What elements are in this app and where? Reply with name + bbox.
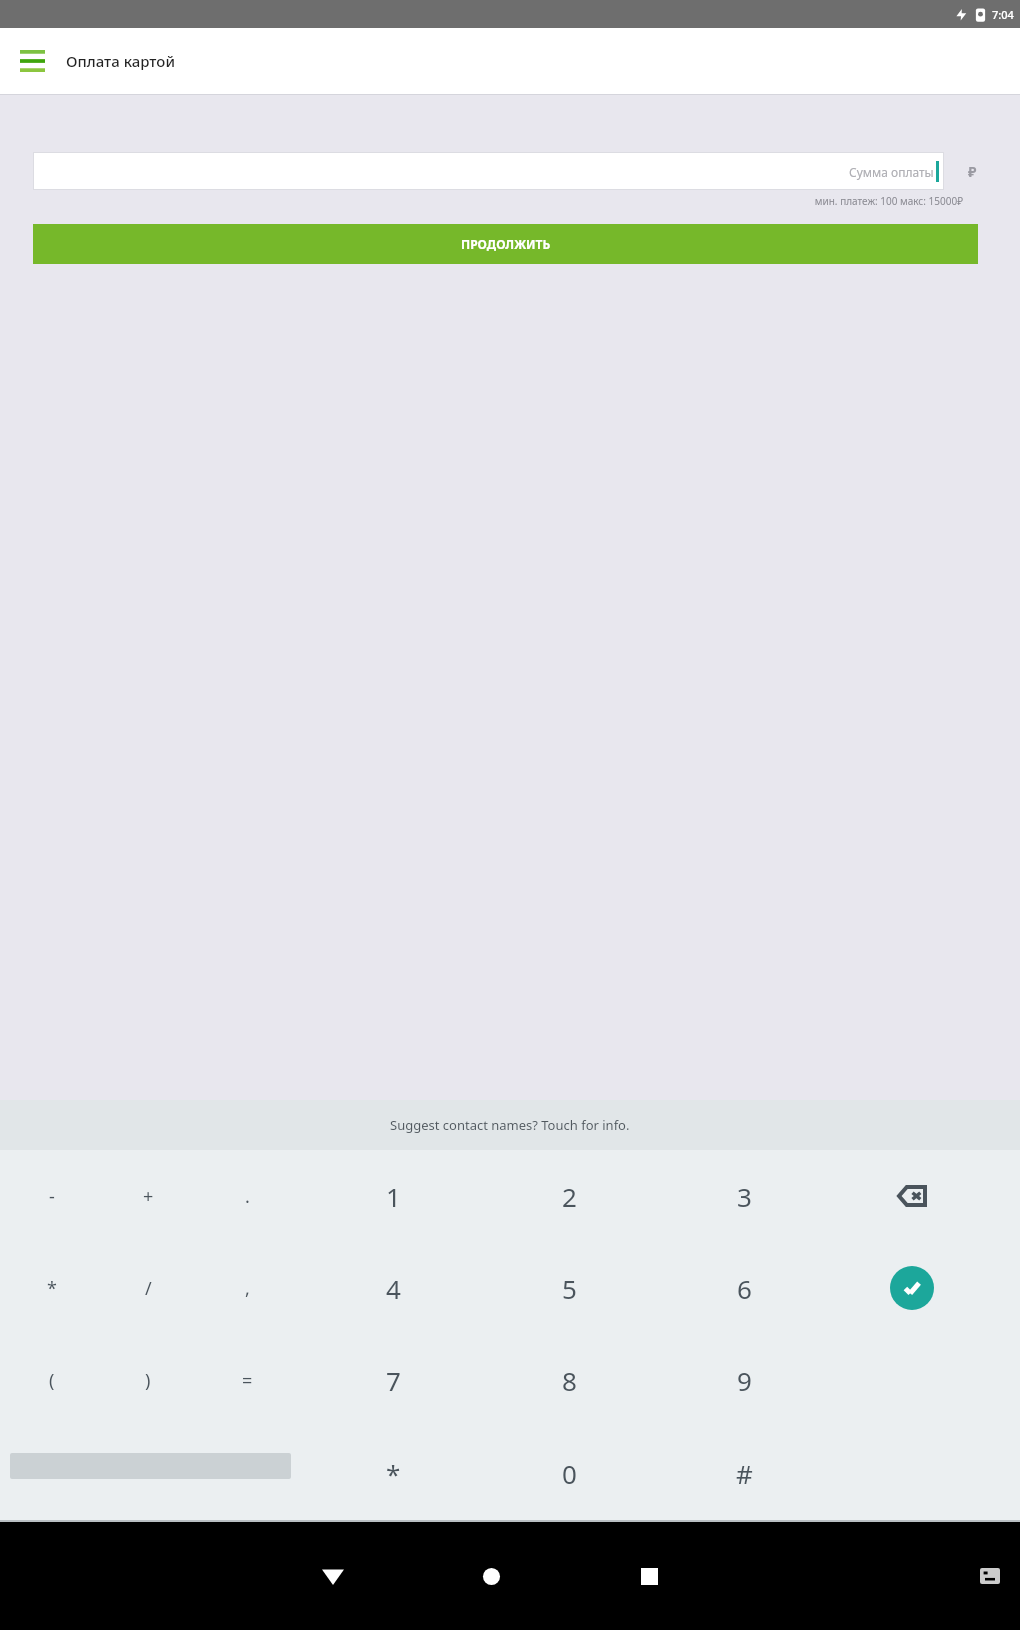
staticText: , [245, 1276, 250, 1301]
staticText: / [145, 1276, 152, 1301]
staticText: 2 [562, 1179, 577, 1214]
button[interactable]: Home [461, 1522, 521, 1630]
button[interactable]: 7 [360, 1334, 426, 1427]
button[interactable]: . [214, 1150, 280, 1242]
button[interactable]: 3 [711, 1150, 777, 1242]
staticText: мин. платеж: 100 макс: 15000₽ [814, 194, 963, 208]
button[interactable]: # [711, 1427, 777, 1520]
button[interactable]: Recent apps [619, 1522, 679, 1630]
button[interactable]: 6 [711, 1242, 777, 1334]
staticText: 4 [386, 1271, 401, 1306]
staticText: ПРОДОЛЖИТЬ [461, 236, 551, 252]
button[interactable]: = [214, 1334, 280, 1427]
button[interactable]: Switch keyboard [970, 1556, 1010, 1596]
staticText: # [736, 1456, 753, 1491]
button[interactable]: 0 [536, 1427, 602, 1520]
button[interactable]: 2 [536, 1150, 602, 1242]
staticText: 3 [737, 1179, 752, 1214]
button[interactable]: ( [19, 1334, 85, 1427]
staticText: = [242, 1368, 253, 1393]
staticText: - [49, 1184, 55, 1209]
button[interactable]: * [19, 1242, 85, 1334]
button[interactable]: ПРОДОЛЖИТЬ [33, 224, 978, 264]
staticText: ) [145, 1368, 151, 1393]
staticText: 5 [562, 1271, 577, 1306]
staticText: 7:04 [992, 7, 1014, 22]
button[interactable]: , [214, 1242, 280, 1334]
button[interactable]: * [360, 1427, 426, 1520]
staticText: . [245, 1184, 250, 1209]
button[interactable]: / [115, 1242, 181, 1334]
staticText: 9 [737, 1363, 752, 1398]
staticText: 8 [562, 1363, 577, 1398]
button[interactable]: Suggest contact names? Touch for info. [0, 1100, 1020, 1150]
button[interactable]: 8 [536, 1334, 602, 1427]
button[interactable]: 5 [536, 1242, 602, 1334]
staticText: 7 [386, 1363, 401, 1398]
button[interactable]: 4 [360, 1242, 426, 1334]
staticText: * [47, 1276, 57, 1301]
staticText: 1 [386, 1179, 401, 1214]
button[interactable]: Back [303, 1522, 363, 1630]
button[interactable]: ) [115, 1334, 181, 1427]
button[interactable]: Enter [879, 1242, 945, 1334]
staticText: Оплата картой [66, 51, 175, 71]
staticText: 0 [562, 1456, 577, 1491]
button[interactable]: 9 [711, 1334, 777, 1427]
staticText: 6 [737, 1271, 752, 1306]
staticText: Сумма оплаты [849, 164, 934, 180]
button[interactable]: 1 [360, 1150, 426, 1242]
staticText: Suggest contact names? Touch for info. [390, 1116, 630, 1134]
button[interactable]: - [19, 1150, 85, 1242]
button[interactable]: Menu [10, 39, 54, 83]
staticText: ₽ [968, 162, 977, 181]
staticText: ( [49, 1368, 55, 1393]
button[interactable]: Backspace [879, 1150, 945, 1242]
staticText: * [386, 1456, 401, 1491]
button[interactable]: + [115, 1150, 181, 1242]
button[interactable]: Сумма оплаты [33, 152, 944, 190]
staticText: + [143, 1184, 154, 1209]
